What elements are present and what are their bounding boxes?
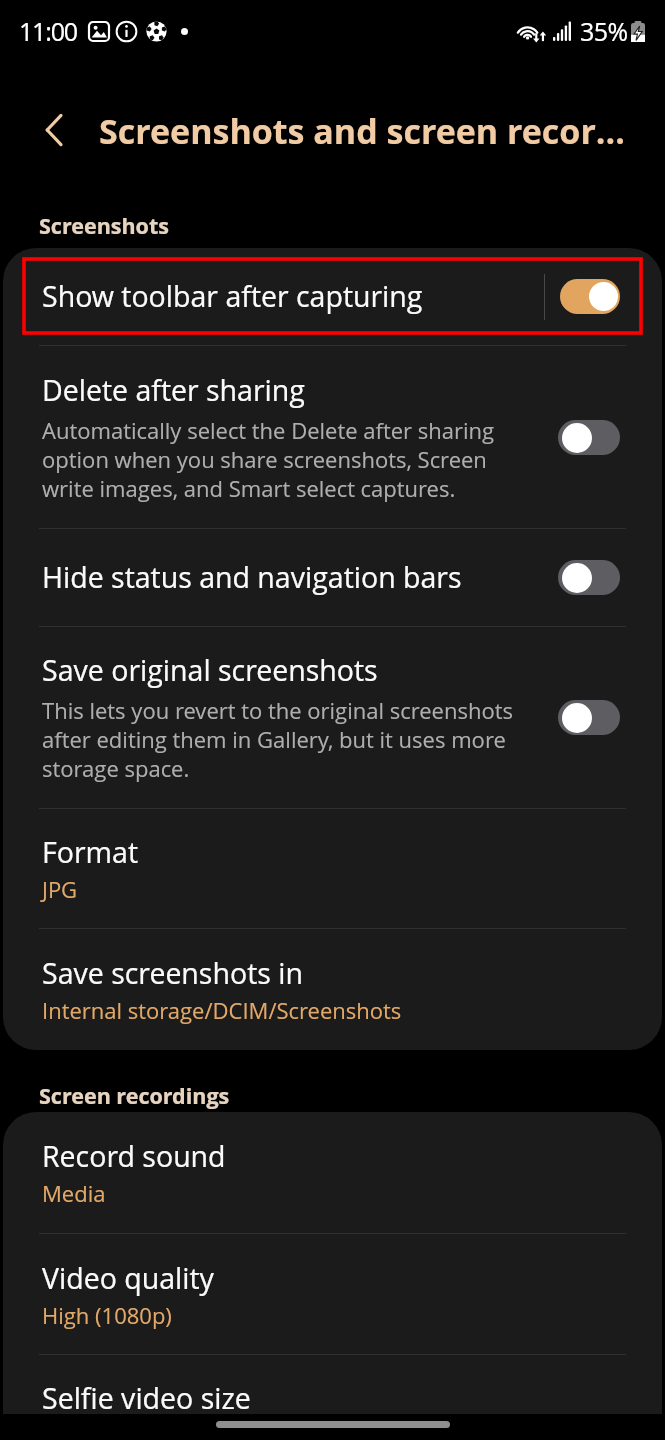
staticText: Internal storage/DCIM/Screenshots	[42, 995, 402, 1025]
staticText: Hide status and navigation bars	[42, 558, 462, 597]
button[interactable]: Save original screenshots	[3, 627, 662, 808]
staticText: Format	[42, 833, 138, 872]
button[interactable]: Record sound	[3, 1112, 662, 1233]
button[interactable]: Save screenshots in	[3, 929, 662, 1050]
staticText: Automatically select the Delete after sh…	[42, 415, 502, 504]
staticText: This lets you revert to the original scr…	[42, 695, 542, 784]
button[interactable]: Selfie video size	[3, 1355, 662, 1440]
staticText: Screenshots and screen recor...	[99, 108, 625, 154]
staticText: 11:00	[19, 14, 77, 48]
staticText: High (1080p)	[42, 1300, 172, 1330]
button[interactable]: Save original screenshots, off	[558, 700, 620, 735]
staticText: 35%	[580, 14, 628, 48]
button[interactable]: Video quality	[3, 1234, 662, 1354]
button[interactable]: Format	[3, 809, 662, 928]
staticText: Show toolbar after capturing	[42, 277, 423, 316]
staticText: JPG	[42, 874, 78, 904]
staticText: Record sound	[42, 1137, 226, 1176]
staticText: Delete after sharing	[42, 371, 305, 410]
staticText: Save original screenshots	[42, 651, 378, 690]
button[interactable]: Hide status and navigation bars, off	[558, 560, 620, 595]
staticText: Selfie video size	[42, 1379, 251, 1418]
button[interactable]: Show toolbar after capturing, on	[560, 279, 620, 314]
button[interactable]: Delete after sharing	[3, 346, 662, 528]
button[interactable]: Show toolbar after capturing	[3, 248, 662, 345]
staticText: Screen recordings	[39, 1081, 230, 1110]
button[interactable]: Hide status and navigation bars	[3, 529, 662, 626]
staticText: Media	[42, 1178, 106, 1208]
staticText: Video quality	[42, 1259, 214, 1298]
staticText: Screenshots	[39, 211, 169, 240]
button[interactable]: Back	[30, 106, 78, 154]
button[interactable]: Delete after sharing, off	[558, 420, 620, 455]
staticText: Save screenshots in	[42, 954, 303, 993]
